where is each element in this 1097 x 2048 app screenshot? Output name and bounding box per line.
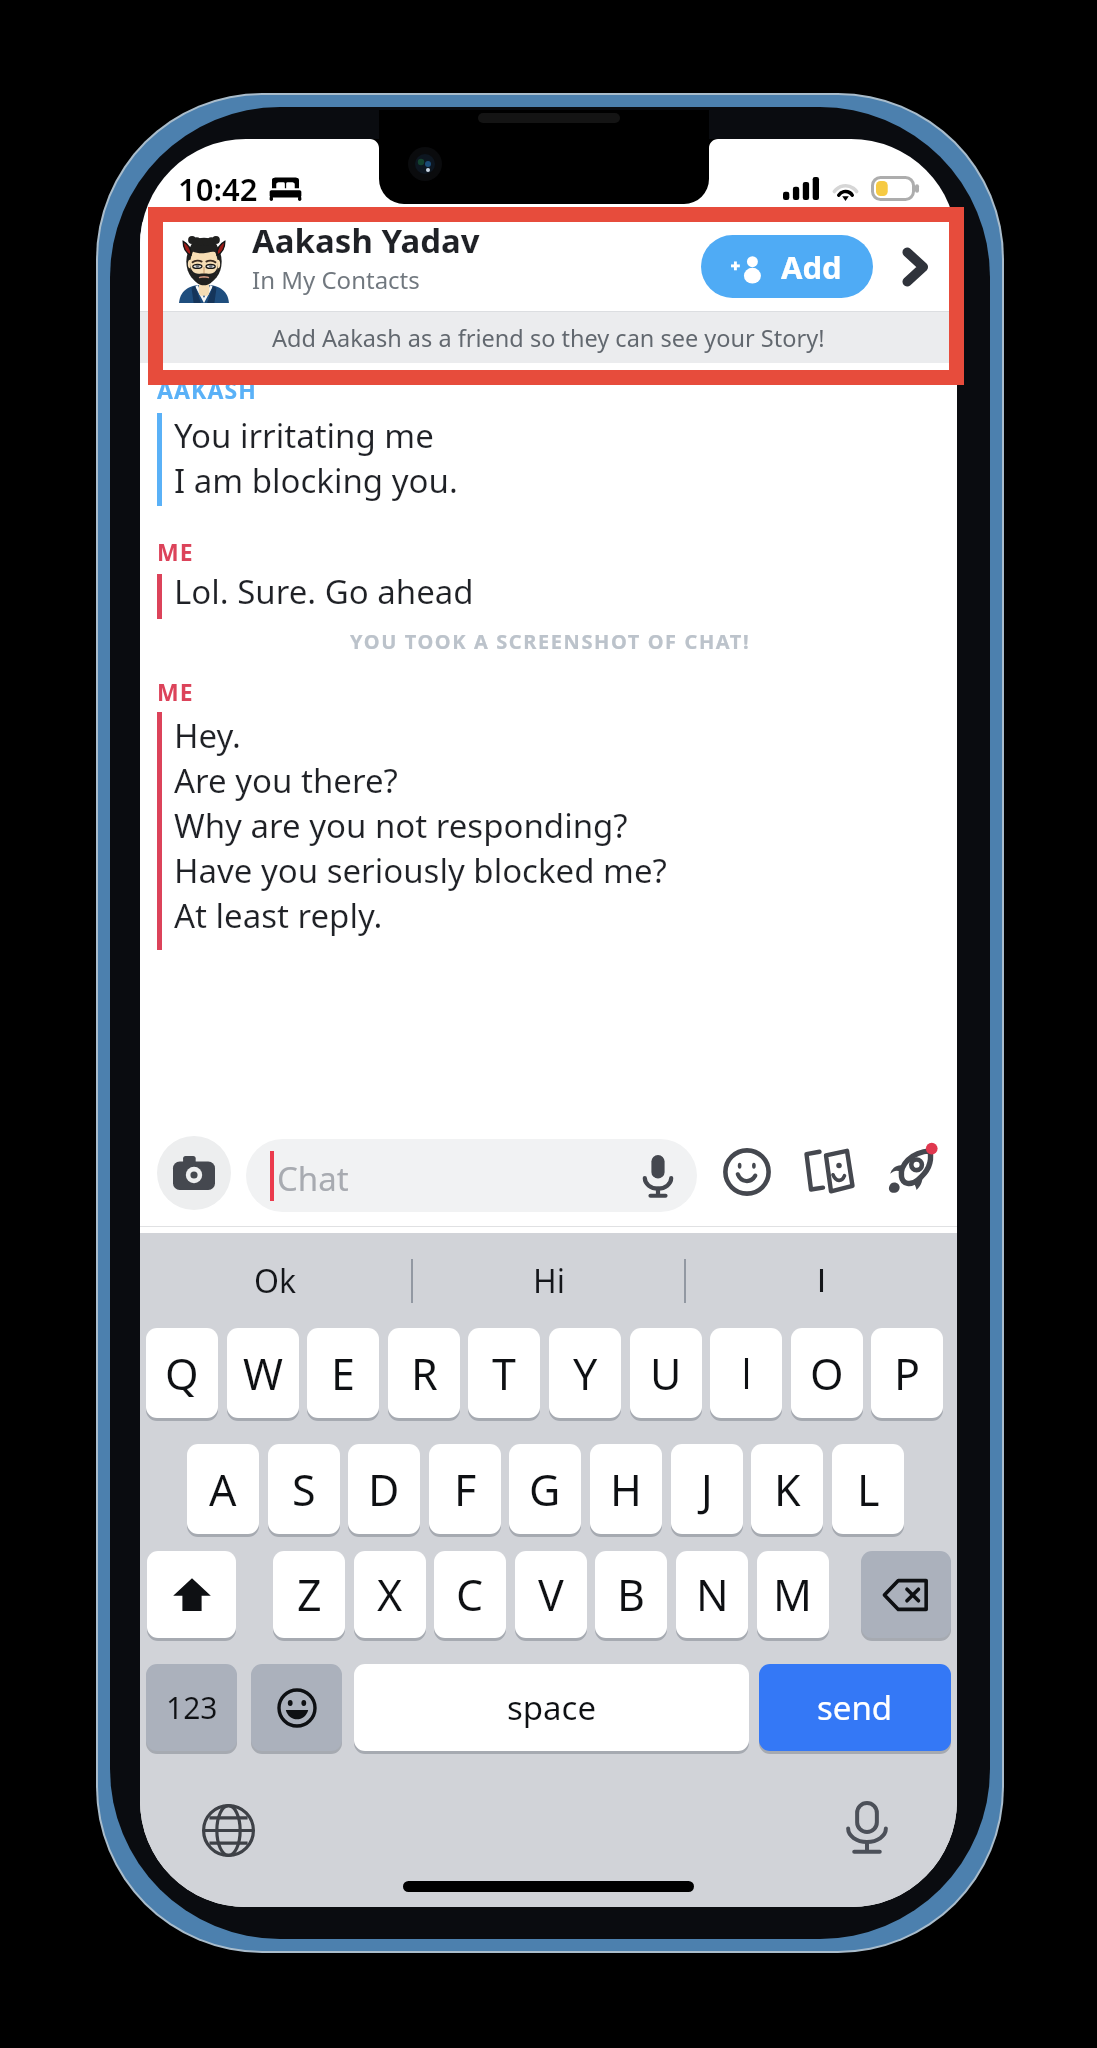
staticText: Lol. Sure. Go ahead — [174, 569, 474, 614]
button[interactable]: S — [268, 1444, 340, 1534]
staticText: Y — [573, 1344, 598, 1403]
button[interactable]: Z — [273, 1551, 345, 1638]
button[interactable]: Backspace — [861, 1551, 951, 1638]
button[interactable]: E — [307, 1328, 379, 1418]
button[interactable]: Open profile — [895, 247, 935, 287]
staticText: 10:42 — [178, 168, 258, 210]
button[interactable]: Q — [146, 1328, 218, 1418]
button[interactable]: Change keyboard — [202, 1804, 255, 1857]
staticText: Q — [165, 1344, 199, 1403]
staticText: Z — [297, 1565, 322, 1624]
staticText: S — [292, 1460, 316, 1519]
button[interactable]: J — [671, 1444, 743, 1534]
staticText: F — [454, 1460, 477, 1519]
button[interactable]: Chat — [246, 1139, 697, 1212]
staticText: P — [894, 1344, 921, 1403]
staticText: YOU TOOK A SCREENSHOT OF CHAT! — [350, 628, 751, 655]
staticText: X — [377, 1565, 403, 1624]
staticText: T — [492, 1344, 516, 1403]
staticText: Are you there? — [174, 758, 398, 803]
button[interactable]: B — [595, 1551, 667, 1638]
staticText: U — [650, 1344, 682, 1403]
staticText: C — [456, 1565, 484, 1624]
staticText: AAKASH — [157, 374, 257, 405]
staticText: A — [209, 1460, 237, 1519]
button[interactable]: space — [354, 1664, 749, 1751]
staticText: N — [696, 1565, 729, 1624]
staticText: R — [411, 1344, 438, 1403]
button[interactable]: U — [630, 1328, 702, 1418]
button[interactable]: T — [468, 1328, 540, 1418]
staticText: K — [774, 1460, 801, 1519]
staticText: Have you seriously blocked me? — [174, 848, 667, 893]
staticText: D — [368, 1460, 400, 1519]
staticText: 123 — [166, 1687, 218, 1728]
button[interactable]: Dictate — [838, 1799, 896, 1857]
staticText: B — [617, 1565, 645, 1624]
staticText: I am blocking you. — [174, 458, 458, 503]
button[interactable]: C — [434, 1551, 506, 1638]
button[interactable] — [710, 1328, 782, 1418]
button[interactable]: R — [388, 1328, 460, 1418]
staticText: W — [243, 1344, 283, 1403]
staticText: Chat — [277, 1156, 349, 1201]
button[interactable]: W — [227, 1328, 299, 1418]
button[interactable]: A — [187, 1444, 259, 1534]
button[interactable]: Y — [549, 1328, 621, 1418]
staticText: Hi — [533, 1259, 565, 1303]
button[interactable]: Add — [701, 235, 873, 298]
button[interactable]: Ok — [140, 1233, 411, 1328]
button[interactable]: Emoji — [251, 1664, 342, 1751]
button[interactable]: G — [509, 1444, 581, 1534]
button[interactable]: Rocket — [880, 1140, 942, 1202]
button[interactable]: Cameo — [799, 1143, 857, 1201]
staticText: Hey. — [174, 713, 241, 758]
staticText: Add — [781, 246, 842, 288]
staticText: Ok — [254, 1259, 297, 1303]
staticText: In My Contacts — [252, 263, 420, 296]
button[interactable] — [686, 1233, 957, 1328]
staticText: H — [610, 1460, 642, 1519]
staticText: ME — [157, 536, 194, 567]
button[interactable] — [147, 1551, 236, 1638]
staticText: send — [817, 1685, 893, 1730]
staticText: E — [331, 1344, 355, 1403]
button[interactable]: Aakash Yadav — [140, 222, 957, 311]
button[interactable]: V — [515, 1551, 587, 1638]
staticText: V — [538, 1565, 564, 1624]
staticText: Add Aakash as a friend so they can see y… — [272, 322, 825, 354]
button[interactable]: N — [676, 1551, 748, 1638]
button[interactable]: Camera — [157, 1136, 231, 1210]
staticText: J — [701, 1460, 713, 1519]
staticText: Aakash Yadav — [252, 218, 480, 263]
button[interactable]: K — [751, 1444, 823, 1534]
staticText: M — [773, 1565, 813, 1624]
button[interactable]: 123 — [146, 1664, 237, 1751]
button[interactable]: F — [429, 1444, 501, 1534]
staticText: Why are you not responding? — [174, 803, 628, 848]
button[interactable]: L — [832, 1444, 904, 1534]
staticText: ME — [157, 676, 194, 707]
button[interactable]: M — [757, 1551, 829, 1638]
button[interactable]: O — [791, 1328, 863, 1418]
button[interactable]: Stickers — [718, 1143, 776, 1201]
button[interactable]: send — [759, 1664, 951, 1751]
button[interactable]: P — [871, 1328, 943, 1418]
button[interactable]: Add Aakash as a friend so they can see y… — [140, 312, 957, 363]
staticText: space — [507, 1685, 597, 1730]
button[interactable]: Hi — [413, 1233, 684, 1328]
button[interactable]: X — [354, 1551, 426, 1638]
staticText: G — [529, 1460, 561, 1519]
staticText: You irritating me — [174, 413, 434, 458]
staticText: L — [857, 1460, 880, 1519]
button[interactable]: D — [348, 1444, 420, 1534]
staticText: O — [810, 1344, 844, 1403]
button[interactable]: H — [590, 1444, 662, 1534]
staticText: At least reply. — [174, 893, 383, 938]
